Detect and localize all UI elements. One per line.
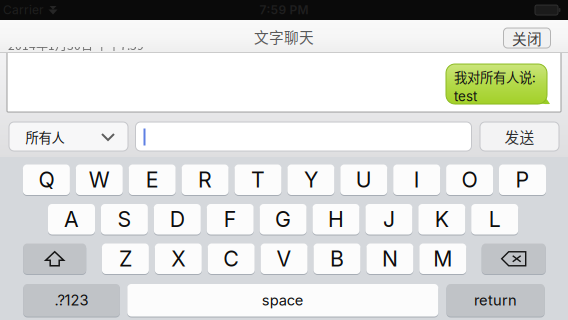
button[interactable]: X: [155, 243, 202, 274]
staticText: space: [262, 291, 304, 309]
button[interactable]: N: [366, 243, 413, 274]
staticText: C: [223, 246, 239, 272]
staticText: U: [356, 167, 372, 193]
staticText: V: [277, 246, 292, 272]
button[interactable]: I: [393, 164, 440, 195]
staticText: D: [170, 206, 185, 232]
button[interactable]: F: [207, 204, 254, 234]
staticText: Z: [119, 246, 132, 272]
staticText: L: [489, 206, 501, 232]
button[interactable]: P: [499, 164, 546, 195]
staticText: return: [474, 291, 517, 309]
staticText: N: [382, 246, 398, 272]
staticText: K: [435, 206, 449, 232]
button[interactable]: A: [48, 204, 95, 234]
staticText: 7:59 PM: [259, 3, 308, 17]
button[interactable]: R: [182, 164, 229, 195]
staticText: F: [224, 206, 237, 232]
button[interactable]: Shift: [23, 243, 86, 274]
button[interactable]: S: [101, 204, 148, 234]
button[interactable]: U: [340, 164, 387, 195]
button[interactable]: H: [312, 204, 359, 234]
staticText: 所有人: [25, 127, 64, 147]
button[interactable]: W: [76, 164, 123, 195]
staticText: B: [330, 246, 344, 272]
staticText: P: [515, 167, 529, 193]
staticText: O: [462, 167, 478, 193]
button[interactable]: B: [313, 243, 360, 274]
staticText: R: [198, 167, 212, 193]
staticText: 我对所有人说:: [454, 67, 536, 86]
button[interactable]: Q: [23, 164, 70, 195]
button[interactable]: E: [129, 164, 176, 195]
staticText: test: [454, 88, 477, 104]
button[interactable]: Y: [287, 164, 334, 195]
button[interactable]: return: [446, 284, 545, 316]
staticText: M: [433, 246, 452, 272]
button[interactable]: D: [154, 204, 201, 234]
staticText: G: [275, 206, 291, 232]
button[interactable]: Delete: [482, 243, 546, 274]
staticText: S: [117, 206, 131, 232]
staticText: Carrier: [3, 3, 44, 17]
staticText: W: [89, 167, 110, 193]
button[interactable]: L: [471, 204, 518, 234]
button[interactable]: T: [234, 164, 281, 195]
button[interactable]: C: [208, 243, 255, 274]
button[interactable]: V: [261, 243, 308, 274]
button[interactable]: 关闭: [503, 28, 550, 48]
staticText: J: [383, 206, 395, 232]
button[interactable]: 发送: [480, 122, 559, 151]
staticText: Y: [304, 167, 318, 193]
staticText: E: [146, 167, 159, 193]
staticText: Q: [38, 167, 54, 193]
staticText: 文字聊天: [254, 26, 314, 47]
button[interactable]: O: [446, 164, 493, 195]
staticText: 2014年1月30日 下午7:59: [8, 36, 144, 53]
button[interactable]: .?123: [23, 284, 120, 316]
staticText: T: [251, 167, 265, 193]
staticText: 关闭: [512, 27, 542, 49]
button[interactable]: M: [419, 243, 466, 274]
staticText: I: [414, 167, 420, 193]
staticText: 发送: [504, 126, 534, 147]
staticText: A: [64, 206, 79, 232]
staticText: X: [171, 246, 185, 272]
button[interactable]: K: [418, 204, 465, 234]
button[interactable]: space: [127, 284, 438, 316]
button[interactable]: Z: [102, 243, 149, 274]
button[interactable]: G: [260, 204, 307, 234]
staticText: H: [328, 206, 344, 232]
button[interactable]: J: [365, 204, 412, 234]
staticText: .?123: [55, 291, 89, 309]
button[interactable]: 所有人: [9, 122, 128, 151]
